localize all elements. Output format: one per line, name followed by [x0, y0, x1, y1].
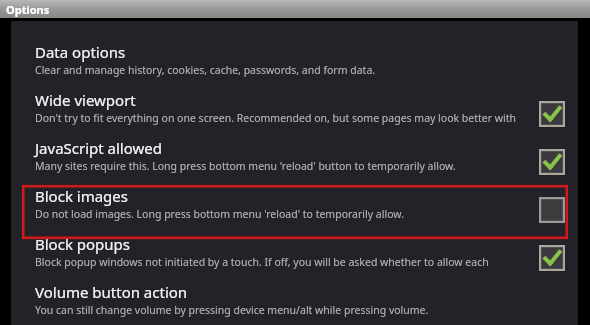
staticText: Wide viewport: [35, 90, 136, 110]
staticText: Options: [6, 2, 50, 17]
button[interactable]: Block popups: [11, 234, 578, 282]
staticText: Don't try to fit everything on one scree…: [35, 111, 518, 125]
staticText: Block popup windows not initiated by a t…: [35, 255, 518, 269]
button[interactable]: Enabled: [539, 245, 565, 271]
button[interactable]: Block images: [11, 186, 578, 234]
button[interactable]: Enabled: [539, 101, 565, 127]
button[interactable]: JavaScript allowed: [11, 138, 578, 186]
button[interactable]: Volume button action: [11, 282, 578, 325]
button[interactable]: Wide viewport: [11, 90, 578, 138]
button[interactable]: Enabled: [539, 149, 565, 175]
button[interactable]: Data options: [11, 42, 578, 90]
staticText: Do not load images. Long press bottom me…: [35, 207, 404, 221]
staticText: Block popups: [35, 234, 131, 254]
staticText: Block images: [35, 186, 128, 206]
staticText: Many sites require this. Long press bott…: [35, 159, 456, 173]
staticText: Data options: [35, 42, 126, 62]
staticText: Volume button action: [35, 282, 188, 302]
staticText: You can still change volume by pressing …: [35, 303, 429, 317]
staticText: JavaScript allowed: [35, 138, 162, 158]
button[interactable]: Disabled: [539, 197, 565, 223]
staticText: Clear and manage history, cookies, cache…: [35, 63, 376, 77]
